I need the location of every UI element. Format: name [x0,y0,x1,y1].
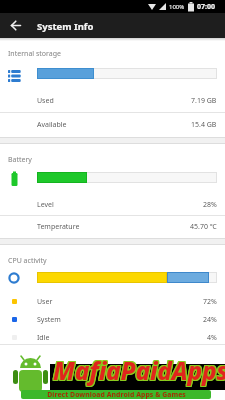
staticText: 72% [203,297,217,307]
staticText: 4% [207,333,217,343]
staticText: MafiaPaidApps [52,353,225,386]
staticText: Idle [37,333,50,343]
staticText: System Info [37,20,94,33]
staticText: Temperature [37,222,80,232]
staticText: Used [37,96,54,106]
staticText: MafiaPaidApps [54,353,225,386]
staticText: Level [37,200,54,210]
staticText: 100% [169,3,185,11]
staticText: MafiaPaidApps [54,354,225,387]
staticText: Available [37,120,67,130]
staticText: 24% [203,315,217,325]
staticText: System [37,315,61,325]
staticText: MafiaPaidApps [53,355,225,388]
staticText: MafiaPaidApps [54,355,225,388]
staticText: 7.19 GB [191,96,217,106]
staticText: 07:00 [197,2,215,12]
staticText: Battery [8,155,32,165]
staticText: 45.70 ℃ [190,222,217,232]
button[interactable]: System Info [0,13,225,38]
button[interactable]: 100% [0,0,225,13]
staticText: MafiaPaidApps [52,355,225,388]
staticText: User [37,297,53,307]
staticText: CPU activity [8,256,47,266]
staticText: MafiaPaidApps [53,354,225,387]
staticText: 28% [203,200,217,210]
staticText: 15.4 GB [191,120,217,130]
staticText: MafiaPaidApps [53,353,225,386]
staticText: Internal storage [8,49,61,59]
staticText: MafiaPaidApps [52,354,225,387]
button[interactable]: MafiaPaidApps [0,352,225,400]
staticText: Direct Download Android Apps & Games [47,390,186,399]
